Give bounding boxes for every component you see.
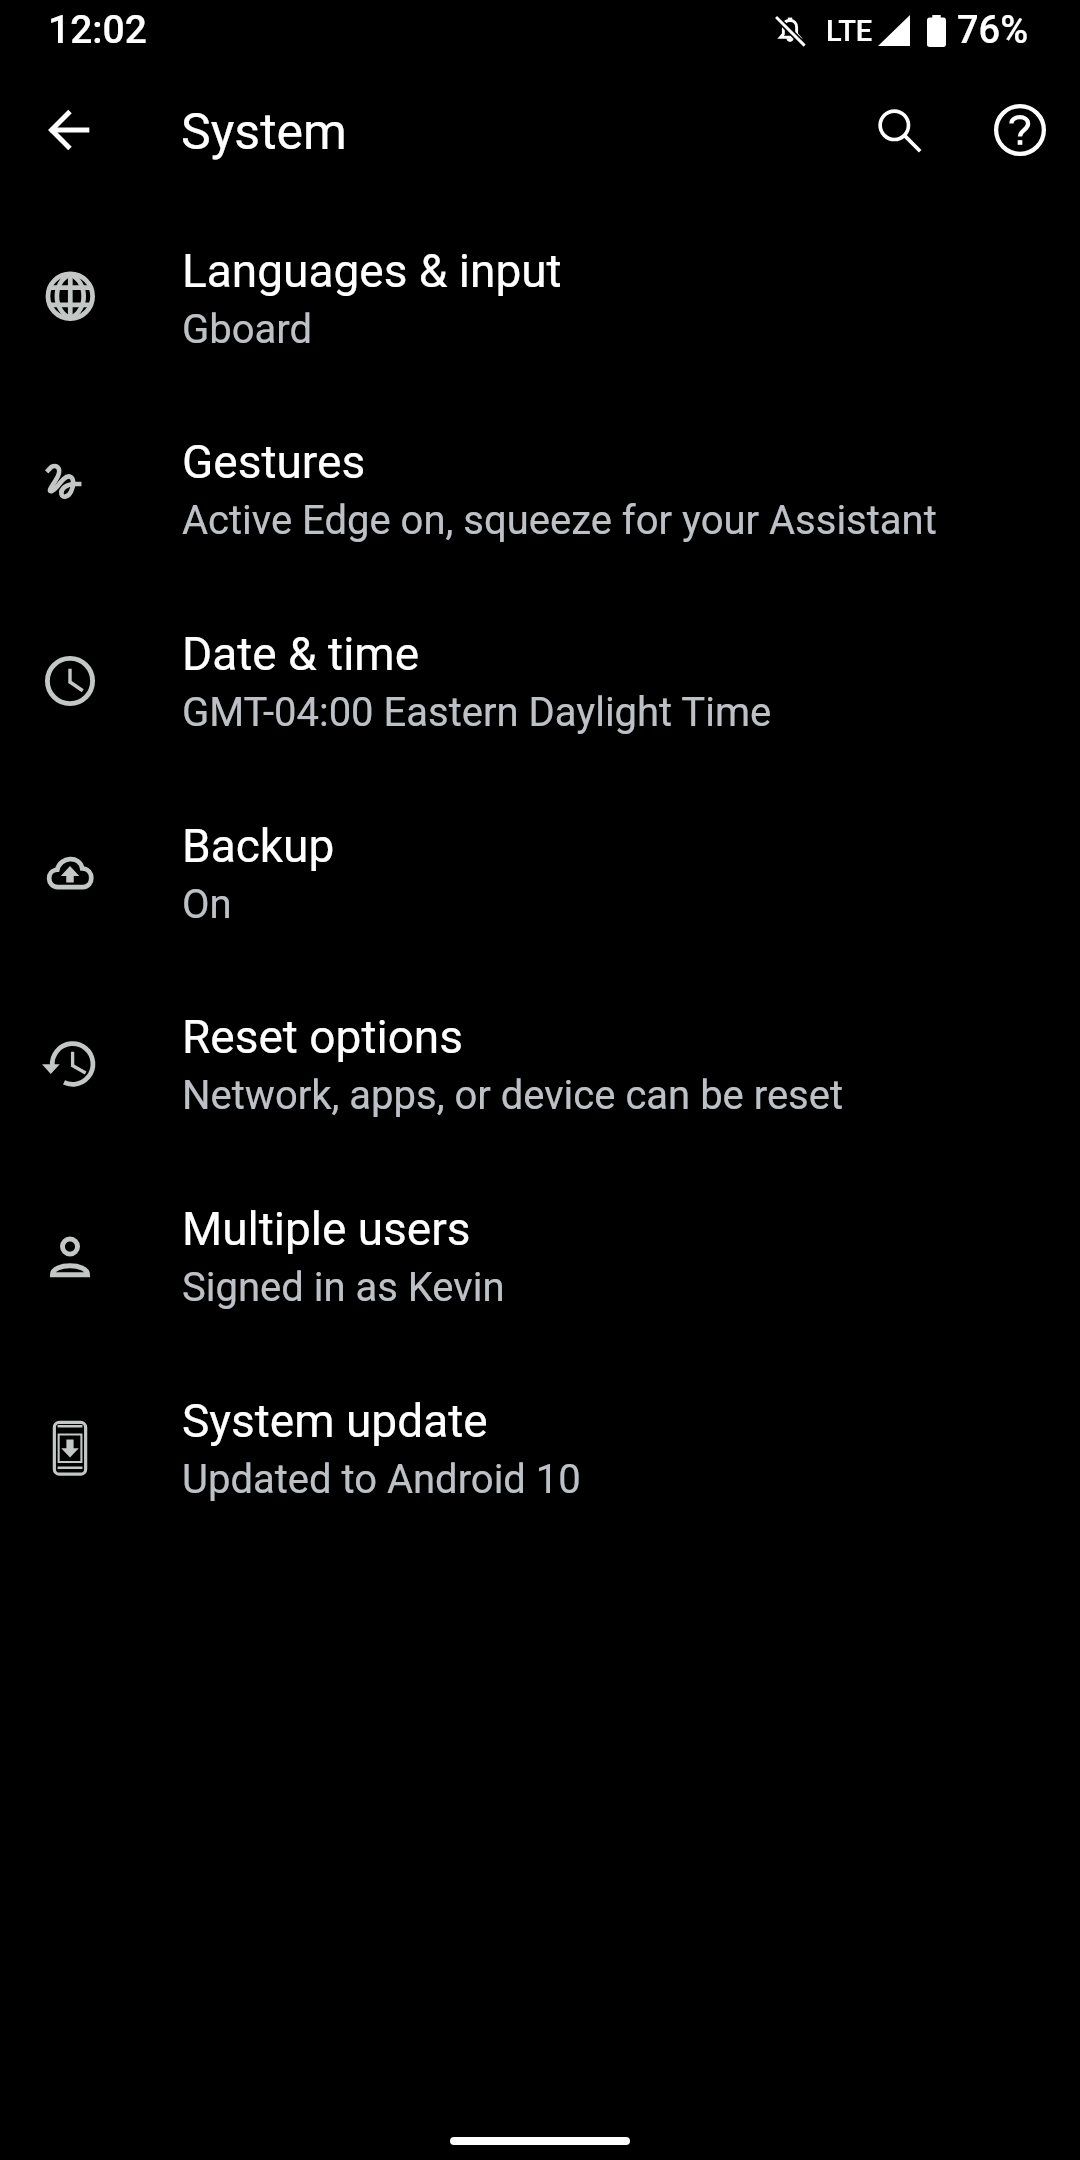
button[interactable]: Backup [0, 777, 1080, 969]
staticText: On [182, 881, 232, 928]
staticText: 12:02 [48, 7, 147, 53]
button[interactable]: Help [976, 86, 1064, 174]
button[interactable]: Gestures [0, 393, 1080, 585]
staticText: Reset options [182, 1010, 464, 1064]
staticText: Languages & input [182, 244, 562, 298]
staticText: Date & time [182, 627, 420, 681]
staticText: Active Edge on, squeeze for your Assista… [182, 497, 937, 544]
staticText: Backup [182, 819, 335, 873]
button[interactable]: Search [850, 86, 938, 174]
staticText: GMT-04:00 Eastern Daylight Time [182, 689, 772, 736]
staticText: Updated to Android 10 [182, 1456, 581, 1503]
button[interactable]: Back [26, 86, 114, 174]
staticText: System [181, 103, 347, 162]
staticText: Signed in as Kevin [182, 1264, 505, 1311]
button[interactable]: System update [0, 1352, 1080, 1544]
staticText: System update [182, 1394, 488, 1448]
button[interactable]: Multiple users [0, 1160, 1080, 1352]
staticText: LTE [826, 14, 873, 48]
staticText: Multiple users [182, 1202, 471, 1256]
button[interactable]: Reset options [0, 968, 1080, 1160]
button[interactable]: Languages & input [0, 202, 1080, 394]
staticText: 76% [957, 8, 1029, 53]
button[interactable]: Date & time [0, 585, 1080, 777]
staticText: Gboard [182, 306, 313, 353]
staticText: Gestures [182, 435, 366, 489]
staticText: Network, apps, or device can be reset [182, 1072, 844, 1119]
